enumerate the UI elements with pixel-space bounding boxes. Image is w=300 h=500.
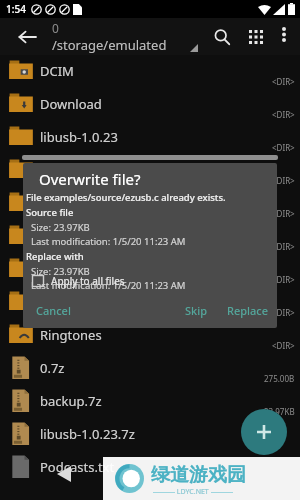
other: Back [57, 466, 71, 482]
button[interactable]: Skip [180, 298, 212, 322]
staticText: <DIR> [272, 340, 295, 351]
staticText: Cancel [36, 303, 71, 318]
staticText: Size: 23.97KB [26, 265, 90, 278]
staticText: 0 [52, 20, 59, 36]
button[interactable]: Cancel [31, 298, 76, 322]
staticText: <DIR> [272, 208, 295, 219]
button[interactable]: libusb-1.0.23 [0, 121, 300, 154]
staticText: libusb-1.0.23 [40, 128, 240, 146]
staticText: Movies [40, 161, 240, 179]
staticText: Replace [227, 303, 269, 318]
staticText: Skip [185, 303, 207, 318]
staticText: Size: 23.97KB [26, 221, 90, 234]
staticText: Apply to all files [51, 274, 125, 288]
button[interactable]: Search [203, 18, 240, 55]
staticText: libusb-1.0.23.7z [40, 425, 240, 443]
staticText: DCIM [40, 62, 240, 80]
staticText: Notifications [40, 227, 240, 245]
staticText: File examples/source/ezusb.c already exi… [26, 191, 226, 204]
staticText: Last modification: 1/5/20 11:23 AM [26, 279, 186, 292]
button[interactable]: DCIM [0, 55, 300, 88]
staticText: 绿道游戏园 [151, 463, 246, 487]
staticText: Download [40, 95, 240, 113]
staticText: <DIR> [272, 109, 295, 120]
staticText: 23.97KB [264, 406, 295, 417]
staticText: 275.00B [264, 373, 295, 384]
button[interactable]: Pictures [0, 253, 300, 286]
staticText: LDYC.NET [175, 487, 211, 497]
button[interactable]: Download [0, 88, 300, 121]
staticText: 1:54 [6, 2, 26, 16]
button[interactable]: More options [268, 18, 300, 50]
button[interactable]: Notifications [0, 220, 300, 253]
button[interactable]: Replace [222, 298, 274, 322]
staticText: <DIR> [272, 307, 295, 318]
button[interactable]: Movies [0, 154, 300, 187]
staticText: Last modification: 1/5/20 11:23 AM [26, 235, 186, 248]
button[interactable]: Podcasts.txt [0, 451, 300, 484]
staticText: Pictures [40, 260, 240, 278]
staticText: Podcasts.txt [40, 458, 240, 476]
staticText: <DIR> [272, 175, 295, 186]
staticText: /storage/emulated [52, 36, 167, 54]
button[interactable]: View mode [237, 18, 274, 55]
staticText: Music [40, 194, 240, 212]
button[interactable]: Navigate up [8, 18, 45, 55]
button[interactable]: Music [0, 187, 300, 220]
button[interactable]: Ringtones [0, 319, 300, 352]
staticText: Ringtones [40, 326, 240, 344]
staticText: <DIR> [272, 76, 295, 87]
staticText: <DIR> [272, 142, 295, 153]
staticText: backup.7z [40, 392, 240, 410]
button[interactable]: Podcasts [0, 286, 300, 319]
staticText: <DIR> [272, 274, 295, 285]
button[interactable]: libusb-1.0.23.7z [0, 418, 300, 451]
button[interactable]: 0.7z [0, 352, 300, 385]
button[interactable]: backup.7z [0, 385, 300, 418]
staticText: 0.7z [40, 359, 240, 377]
staticText: Overwrite file? [39, 169, 141, 189]
staticText: Source file [26, 206, 74, 219]
staticText: Replace with [26, 250, 84, 263]
staticText: Podcasts [40, 293, 240, 311]
staticText: <DIR> [272, 241, 295, 252]
button[interactable]: Add [241, 409, 287, 455]
button[interactable]: Apply to all files [32, 271, 125, 291]
